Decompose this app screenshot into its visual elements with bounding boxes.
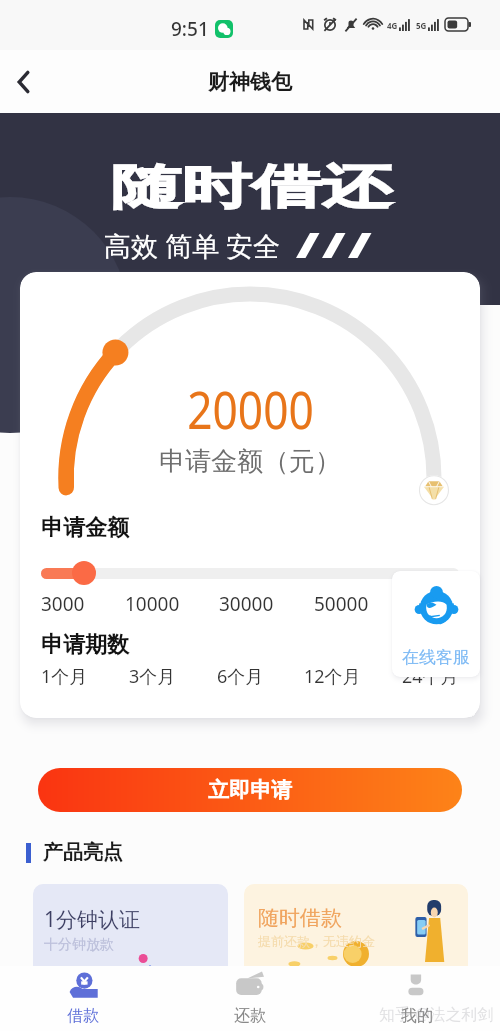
staticText: 借款 [67, 1006, 99, 1026]
button[interactable]: 24个月 [402, 664, 459, 689]
staticText: 30000 [219, 591, 274, 617]
staticText: 1分钟认证 [44, 905, 141, 934]
button[interactable] [41, 561, 459, 585]
staticText: 申请金额（元） [159, 445, 341, 478]
staticText: 提前还款，无违约金 [258, 933, 375, 949]
staticText: 我的 [401, 1006, 433, 1026]
button[interactable]: 1个月 [41, 664, 88, 689]
staticText: 20000 [187, 375, 314, 445]
staticText: 申请金额 [41, 514, 129, 542]
staticText: 10000 [125, 591, 180, 617]
staticText: 财神钱包 [208, 69, 292, 95]
staticText: 9:51 [171, 16, 209, 42]
button[interactable]: 12个月 [304, 664, 361, 689]
button[interactable]: 6个月 [217, 664, 264, 689]
button[interactable]: 随时借款 [244, 884, 468, 984]
staticText: 4G [387, 20, 398, 31]
staticText: 立即申请 [208, 777, 292, 803]
staticText: 在线客服 [402, 647, 470, 668]
button[interactable]: 1分钟认证 [33, 884, 228, 984]
staticText: 十分钟放款 [44, 936, 114, 954]
staticText: 高效 简单 安全 [104, 227, 281, 264]
button[interactable]: 还款 [166, 966, 333, 1031]
staticText: 50000 [314, 591, 369, 617]
button[interactable]: 立即申请 [38, 768, 462, 812]
staticText: 5G [416, 20, 427, 31]
button[interactable]: Online customer service [392, 571, 480, 677]
staticText: 产品亮点 [43, 840, 123, 865]
button[interactable]: Back [2, 60, 46, 104]
staticText: 申请期数 [41, 631, 129, 659]
button[interactable]: 我的 [333, 966, 500, 1031]
staticText: 还款 [234, 1006, 266, 1026]
staticText: 知乎 @法之利剑 [379, 1003, 494, 1025]
staticText: 随时借款 [258, 905, 342, 931]
button[interactable]: 3个月 [129, 664, 176, 689]
staticText: 随时借还 [111, 158, 392, 217]
staticText: 3000 [41, 591, 85, 617]
button[interactable]: 借款 [0, 966, 166, 1031]
